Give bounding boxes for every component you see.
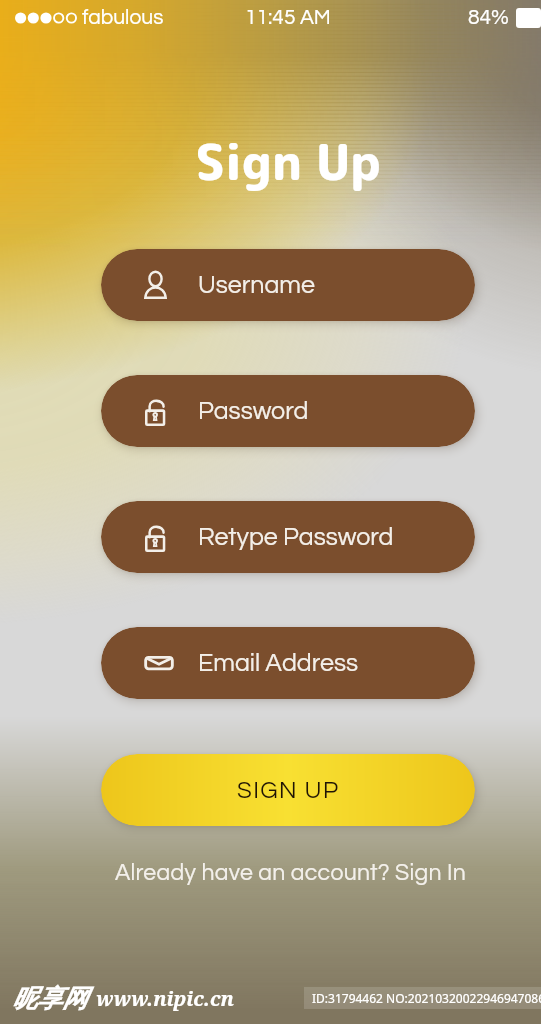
staticText: SIGN UP [237,778,340,803]
button[interactable]: Password [101,501,475,573]
button[interactable]: Already have an account? Sign In [0,861,541,885]
staticText: ID:31794462 NO:20210320022946947086 [312,990,541,1006]
other: Password [144,397,168,426]
staticText: Username [198,272,315,298]
button[interactable]: Password [101,375,475,447]
button[interactable]: SIGN UP [101,754,475,826]
staticText: Email Address [198,650,358,676]
staticText: Retype Password [198,524,394,550]
other: Email [144,653,174,673]
other: Password [144,523,168,552]
staticText: Sign Up [35,127,541,195]
button[interactable]: Email [101,627,475,699]
staticText: 11:45 AM [245,7,331,29]
staticText: 84% [468,7,509,29]
staticText: 昵享网 [12,983,87,1014]
staticText: www.nipic.cn [96,985,234,1012]
staticText: Password [198,398,309,424]
other: Username [144,271,167,299]
button[interactable]: Username [101,249,475,321]
staticText: fabulous [82,7,164,29]
